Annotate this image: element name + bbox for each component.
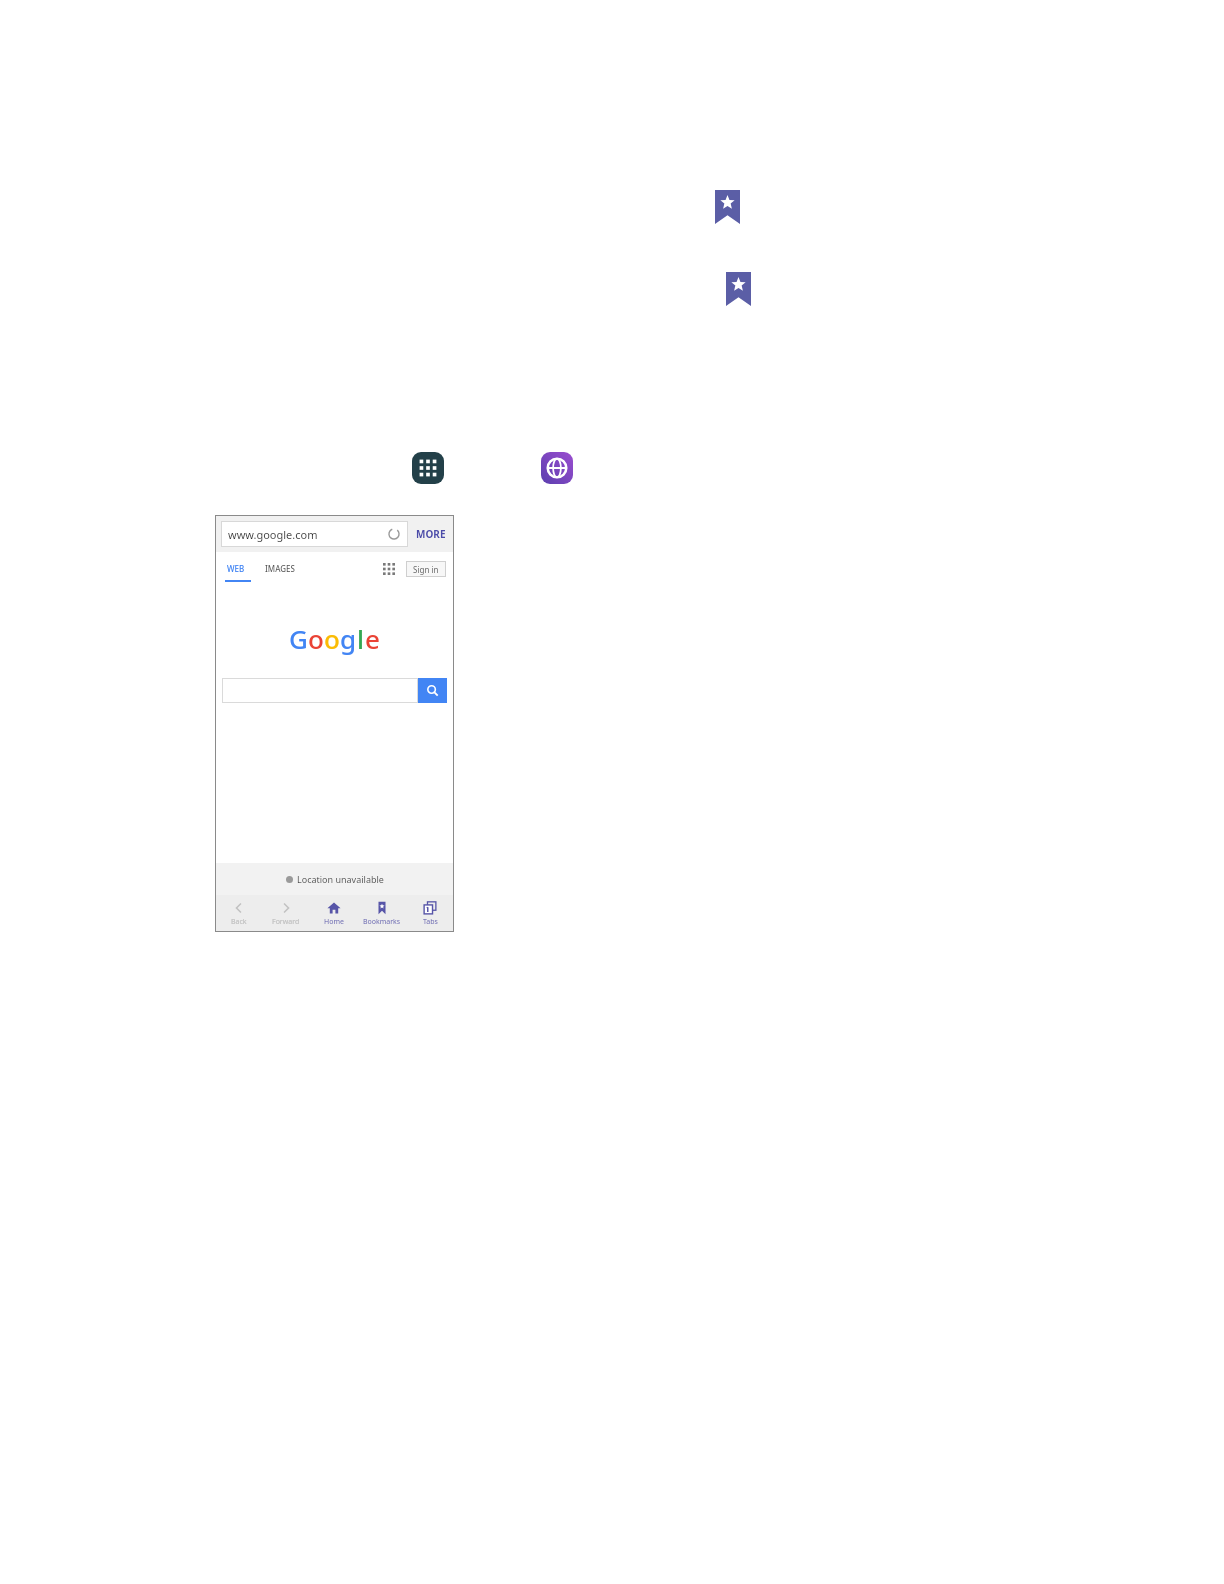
button[interactable]: www.google.com xyxy=(221,521,408,547)
staticText: WEB xyxy=(227,563,245,574)
button[interactable]: Google apps xyxy=(383,563,395,575)
staticText: g xyxy=(340,621,357,656)
staticText: Location unavailable xyxy=(297,873,384,885)
button[interactable]: MORE xyxy=(414,523,448,545)
button[interactable]: Forward xyxy=(262,895,310,932)
button[interactable]: Internet xyxy=(541,452,573,484)
button[interactable]: Home xyxy=(310,895,358,932)
staticText: IMAGES xyxy=(265,563,295,574)
staticText: o xyxy=(308,621,324,656)
staticText: o xyxy=(324,621,340,656)
button[interactable]: Bookmark xyxy=(715,190,740,224)
button[interactable]: Apps xyxy=(412,452,444,484)
staticText: e xyxy=(365,621,380,656)
button[interactable] xyxy=(222,678,418,703)
staticText: Home xyxy=(324,917,344,927)
staticText: l xyxy=(357,621,365,656)
staticText: G xyxy=(289,621,308,656)
button[interactable]: Bookmarks xyxy=(358,895,406,932)
button[interactable]: Back xyxy=(215,895,262,932)
staticText: Bookmarks xyxy=(363,917,401,927)
button[interactable]: Bookmark xyxy=(726,272,751,306)
button[interactable]: Tabs xyxy=(406,895,454,932)
staticText: MORE xyxy=(416,527,446,541)
staticText: www.google.com xyxy=(228,527,387,542)
button[interactable]: Search xyxy=(418,678,447,703)
button[interactable]: IMAGES xyxy=(261,559,299,578)
button[interactable]: Reload xyxy=(387,527,401,541)
button[interactable]: WEB xyxy=(223,559,249,578)
staticText: Forward xyxy=(272,917,300,927)
staticText: Tabs xyxy=(423,917,438,927)
staticText: Back xyxy=(231,917,247,927)
staticText: Sign in xyxy=(413,564,439,575)
button[interactable]: Sign in xyxy=(406,561,446,577)
